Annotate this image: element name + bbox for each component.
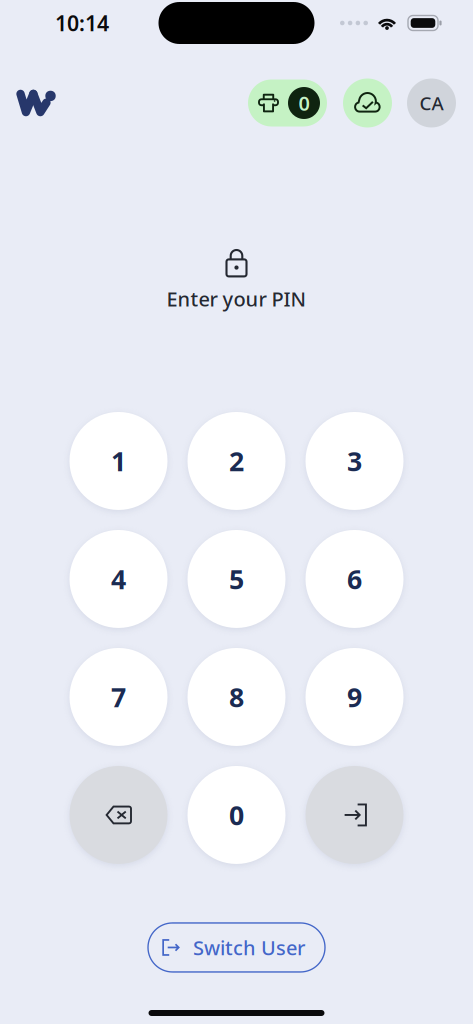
- staticText: 5: [229, 561, 244, 597]
- button[interactable]: 4: [69, 530, 167, 628]
- button[interactable]: Delete: [69, 766, 167, 864]
- staticText: Switch User: [193, 934, 305, 961]
- button[interactable]: 8: [187, 648, 285, 746]
- button[interactable]: 7: [69, 648, 167, 746]
- staticText: 1: [111, 443, 126, 479]
- button[interactable]: 5: [187, 530, 285, 628]
- button[interactable]: 2: [187, 412, 285, 510]
- staticText: 4: [111, 561, 126, 597]
- button[interactable]: Sign in: [305, 766, 403, 864]
- button[interactable]: Sync status: [343, 78, 392, 127]
- staticText: 0: [229, 797, 244, 833]
- button[interactable]: Switch User: [148, 923, 325, 972]
- staticText: Enter your PIN: [166, 285, 306, 312]
- button[interactable]: Home: [16, 90, 55, 116]
- staticText: 8: [229, 679, 244, 715]
- button[interactable]: 9: [305, 648, 403, 746]
- button[interactable]: 6: [305, 530, 403, 628]
- button[interactable]: Account: [407, 78, 456, 127]
- staticText: 3: [347, 443, 362, 479]
- button[interactable]: 1: [69, 412, 167, 510]
- button[interactable]: 3: [305, 412, 403, 510]
- button[interactable]: 0: [187, 766, 285, 864]
- staticText: 0: [298, 90, 309, 116]
- staticText: CA: [419, 91, 443, 115]
- staticText: 10:14: [55, 9, 109, 37]
- button[interactable]: Print queue: [248, 79, 327, 126]
- staticText: 7: [111, 679, 126, 715]
- staticText: 2: [229, 443, 244, 479]
- staticText: 6: [347, 561, 362, 597]
- staticText: 9: [347, 679, 362, 715]
